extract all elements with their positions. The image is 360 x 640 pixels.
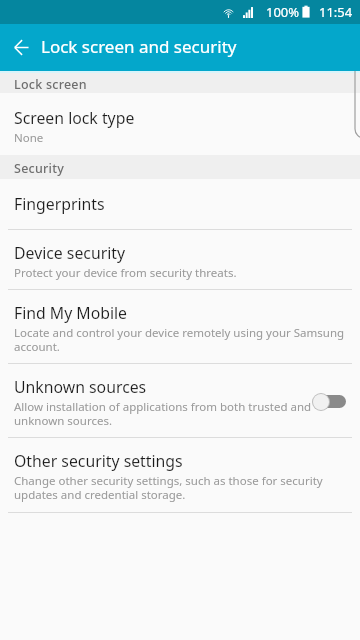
staticText: Screen lock type (14, 107, 135, 129)
staticText: Other security settings (14, 450, 183, 472)
staticText: Change other security settings, such as … (14, 473, 346, 503)
button[interactable]: Find My Mobile (0, 290, 360, 363)
button[interactable]: Unknown sources (0, 364, 360, 437)
staticText: Device security (14, 242, 126, 264)
staticText: Lock screen (14, 76, 87, 93)
button[interactable]: Unknown sources switch (312, 392, 346, 411)
button[interactable]: Device security (0, 230, 360, 289)
staticText: 100% (266, 3, 300, 21)
button[interactable]: Other security settings (0, 438, 360, 512)
staticText: Unknown sources (14, 376, 147, 398)
staticText: Lock screen and security (41, 35, 237, 58)
staticText: Locate and control your device remotely … (14, 325, 346, 355)
staticText: 11:54 (319, 3, 353, 21)
staticText: Allow installation of applications from … (14, 399, 314, 429)
staticText: Find My Mobile (14, 302, 128, 324)
staticText: None (14, 130, 44, 146)
staticText: Fingerprints (14, 193, 105, 215)
button[interactable]: Screen lock type (0, 93, 360, 155)
staticText: Security (14, 160, 65, 177)
staticText: Protect your device from security threat… (14, 265, 237, 281)
button[interactable]: Fingerprints (0, 179, 360, 229)
button[interactable]: Navigate up (0, 24, 42, 71)
